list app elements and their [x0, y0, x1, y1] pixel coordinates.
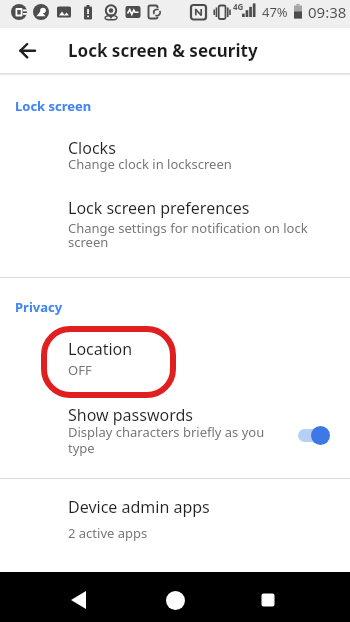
staticText: Show passwords: [68, 404, 193, 426]
staticText: OFF: [68, 361, 92, 379]
staticText: 09:38: [308, 2, 347, 22]
staticText: Device admin apps: [68, 496, 210, 518]
button[interactable]: Device admin apps: [0, 488, 350, 556]
staticText: Display characters briefly as you type: [68, 423, 265, 456]
button[interactable]: [59, 579, 99, 619]
button[interactable]: [296, 426, 330, 445]
staticText: 2 active apps: [68, 524, 148, 542]
button[interactable]: [6, 29, 50, 73]
staticText: Lock screen preferences: [68, 197, 250, 219]
button[interactable]: [155, 580, 195, 620]
staticText: 47%: [262, 3, 288, 21]
staticText: Location: [68, 338, 133, 360]
staticText: Change settings for notification on lock…: [68, 219, 308, 251]
staticText: Clocks: [68, 137, 116, 159]
staticText: Lock screen: [15, 97, 92, 115]
button[interactable]: Clocks: [0, 123, 350, 180]
staticText: Lock screen & security: [68, 39, 258, 62]
button[interactable]: [248, 580, 288, 620]
button[interactable]: Show passwords: [0, 396, 350, 464]
button[interactable]: Lock screen preferences: [0, 190, 350, 268]
staticText: Change clock in lockscreen: [68, 155, 232, 173]
staticText: 4G: [233, 1, 244, 12]
button[interactable]: Location: [0, 330, 350, 394]
staticText: Privacy: [15, 298, 63, 316]
